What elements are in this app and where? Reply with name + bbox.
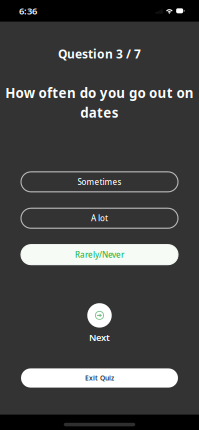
staticText: 6:36 xyxy=(19,5,37,17)
staticText: Next xyxy=(89,331,110,343)
button[interactable]: Rarely/Never xyxy=(21,245,178,265)
staticText: A lot xyxy=(91,213,108,223)
button[interactable]: A lot xyxy=(21,208,178,228)
button[interactable]: Exit Quiz xyxy=(21,368,178,388)
staticText: Exit Quiz xyxy=(85,374,114,382)
button[interactable]: Sometimes xyxy=(21,172,178,192)
staticText: Sometimes xyxy=(77,176,121,187)
staticText: Question 3 / 7 xyxy=(58,46,141,62)
staticText: How often do you go out on xyxy=(5,84,194,102)
button[interactable]: Next xyxy=(87,303,112,343)
staticText: Rarely/Never xyxy=(75,249,124,260)
staticText: dates xyxy=(80,104,119,121)
